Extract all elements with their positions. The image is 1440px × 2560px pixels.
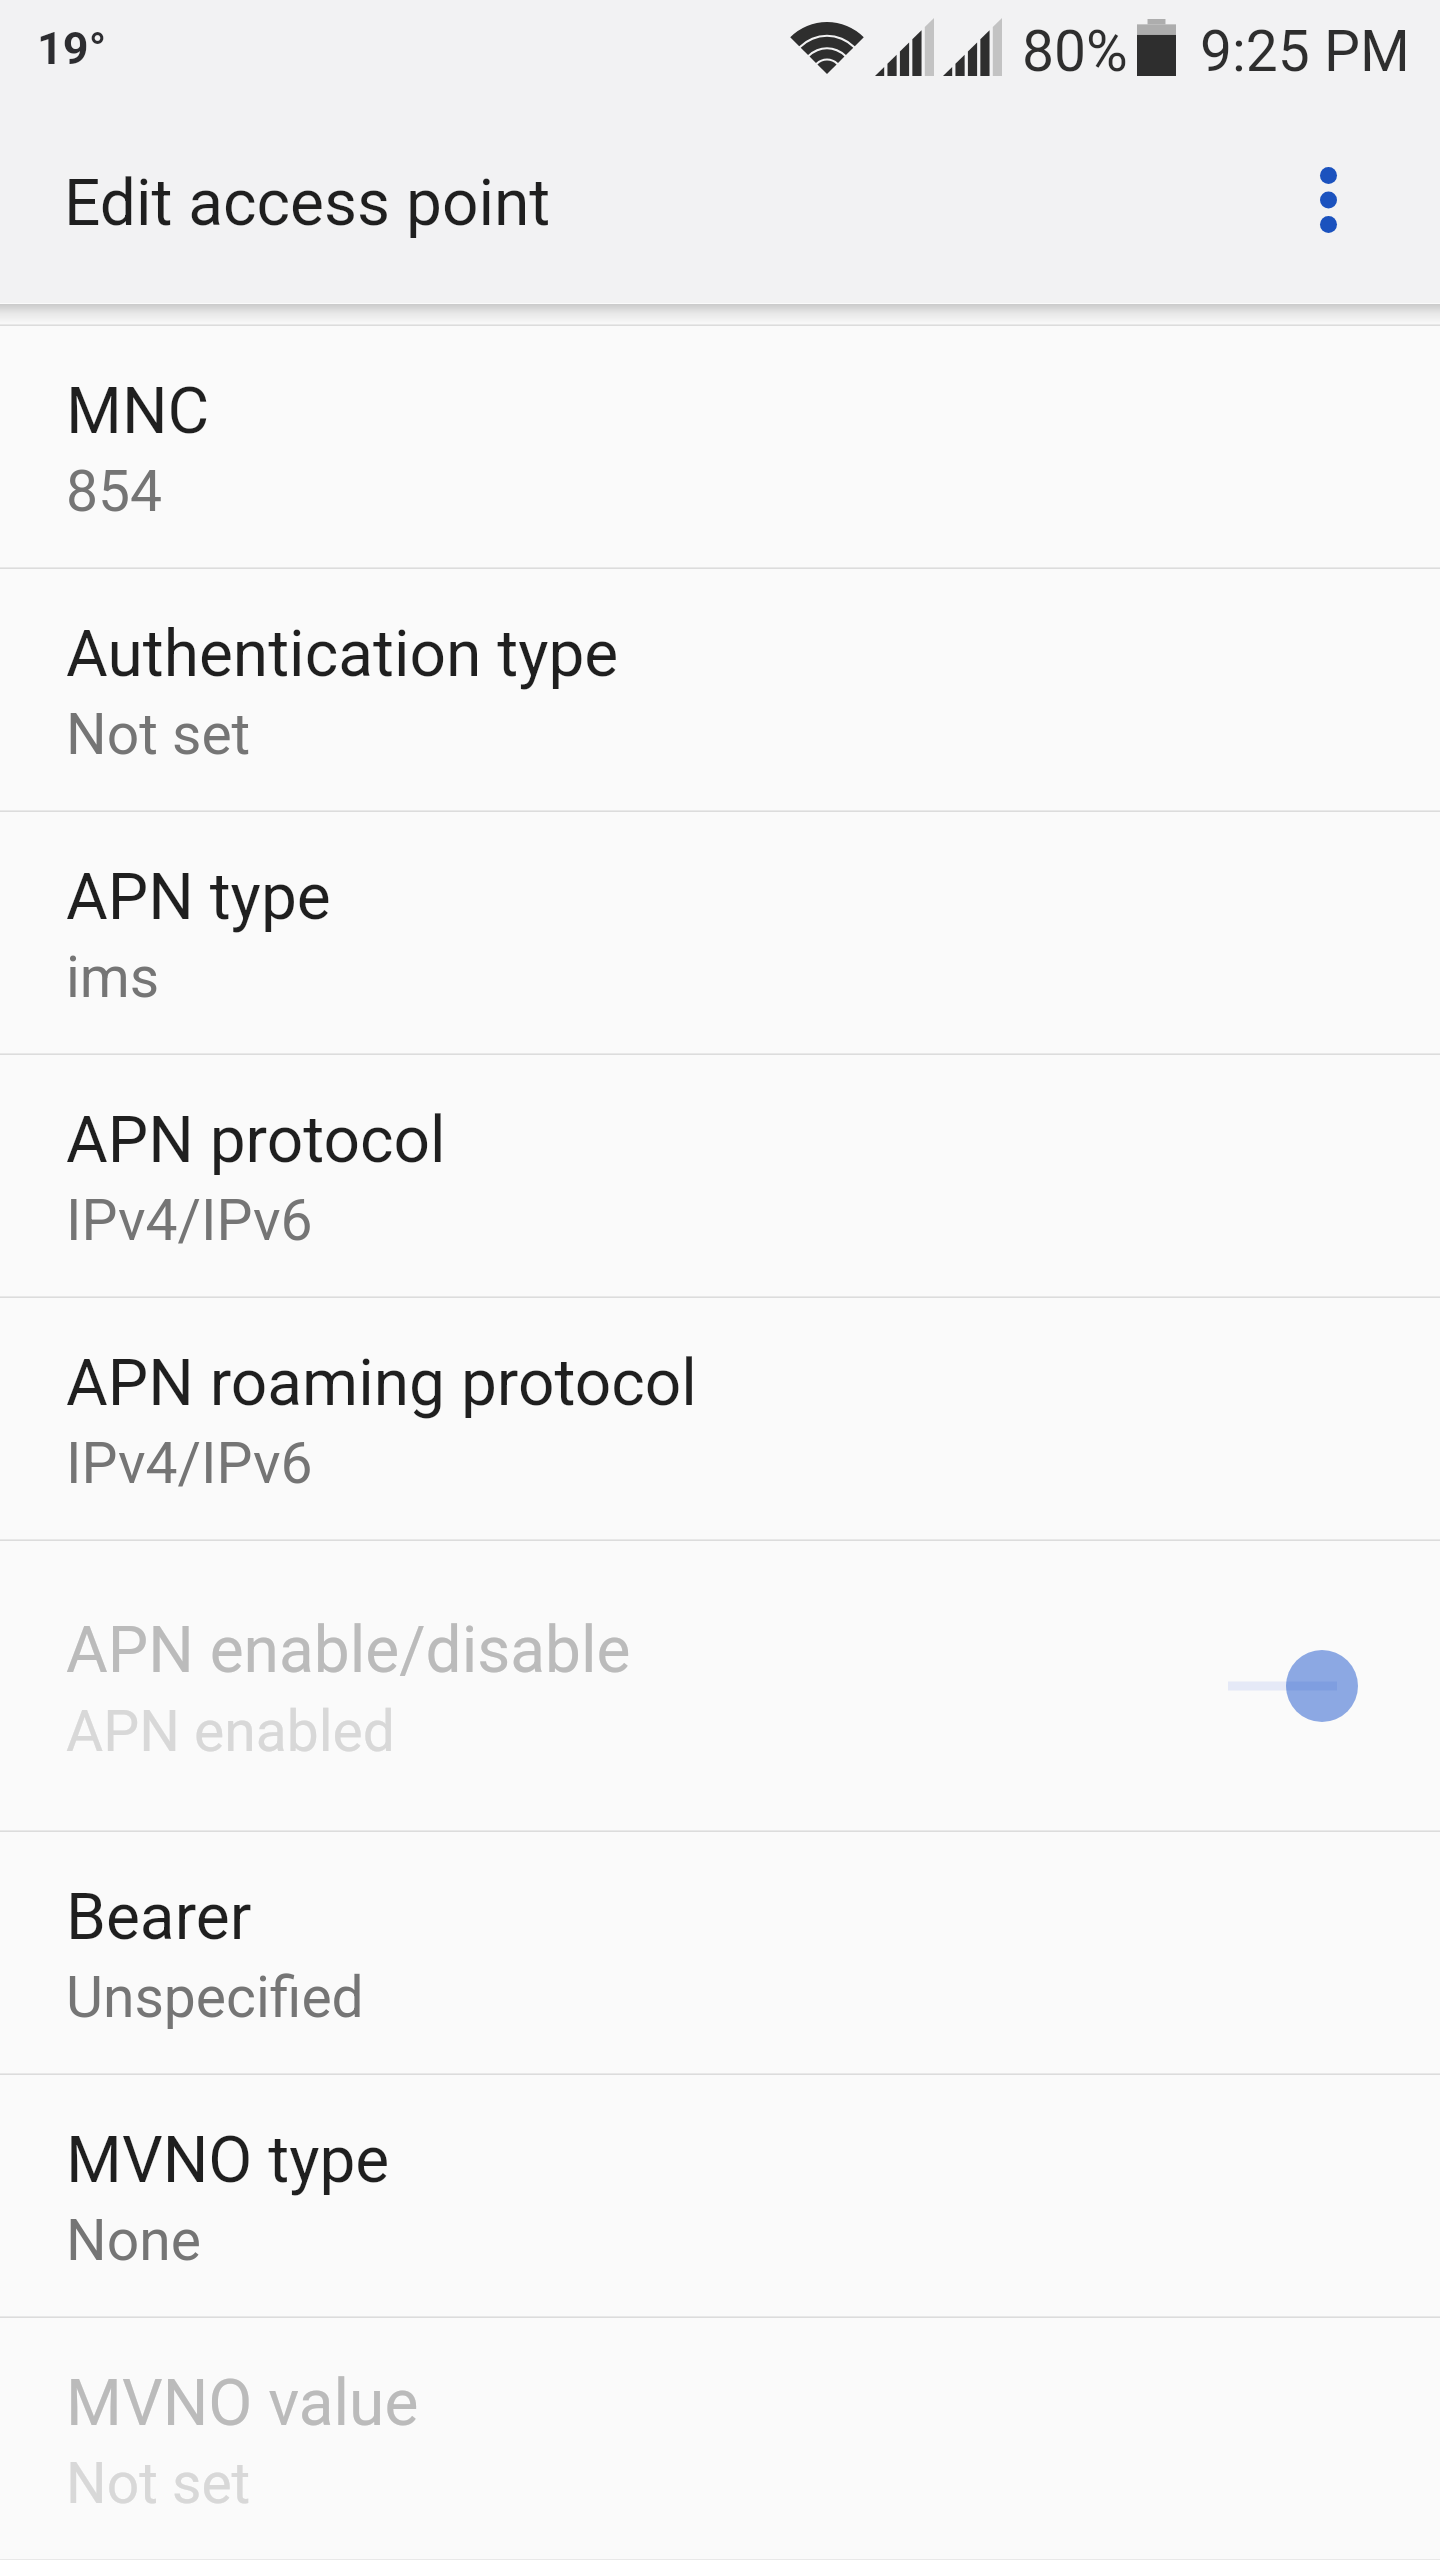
staticText: 19° <box>37 22 107 75</box>
staticText: APN roaming protocol <box>66 1346 697 1421</box>
button[interactable]: APN enable/disable toggle <box>1240 1626 1440 1746</box>
button[interactable]: More options <box>1256 128 1400 272</box>
staticText: 80% <box>1022 18 1128 85</box>
button[interactable]: APN protocol <box>0 1055 1440 1296</box>
staticText: Edit access point <box>64 166 551 241</box>
staticText: APN protocol <box>66 1103 446 1178</box>
staticText: IPv4/IPv6 <box>66 1187 313 1254</box>
staticText: APN enabled <box>66 1698 395 1765</box>
staticText: ims <box>66 944 160 1011</box>
button[interactable]: APN enable/disable <box>0 1541 1440 1830</box>
button[interactable]: MNC <box>0 326 1440 567</box>
button[interactable]: MVNO type <box>0 2075 1440 2316</box>
button[interactable]: Bearer <box>0 1832 1440 2073</box>
button[interactable]: APN roaming protocol <box>0 1298 1440 1539</box>
staticText: Not set <box>66 701 251 768</box>
button[interactable]: Authentication type <box>0 569 1440 810</box>
staticText: Authentication type <box>66 617 619 692</box>
staticText: Unspecified <box>66 1964 364 2031</box>
staticText: APN type <box>66 860 331 935</box>
staticText: 9:25 PM <box>1200 18 1410 85</box>
staticText: MVNO type <box>66 2123 390 2198</box>
staticText: MVNO value <box>66 2366 419 2441</box>
staticText: 854 <box>66 458 163 525</box>
staticText: Not set <box>66 2450 251 2517</box>
button[interactable]: MVNO value <box>0 2318 1440 2559</box>
button[interactable]: APN type <box>0 812 1440 1053</box>
staticText: APN enable/disable <box>66 1613 631 1688</box>
staticText: MNC <box>66 374 210 449</box>
staticText: Bearer <box>66 1880 252 1955</box>
staticText: IPv4/IPv6 <box>66 1430 313 1497</box>
staticText: None <box>66 2207 201 2274</box>
